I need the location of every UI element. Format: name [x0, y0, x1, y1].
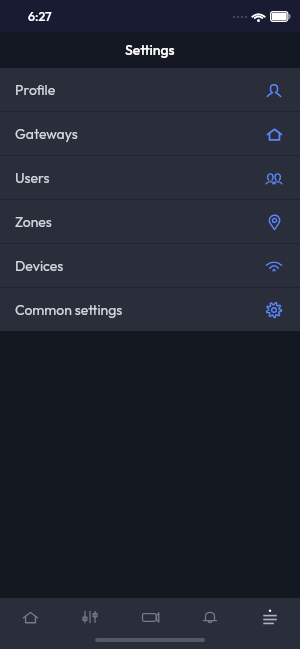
staticText: Zones — [15, 213, 52, 231]
button[interactable]: Common settings — [0, 288, 300, 331]
staticText: Profile — [15, 81, 56, 99]
staticText: Settings — [125, 41, 175, 59]
staticText: 6:27 — [28, 8, 52, 24]
button[interactable]: Gateways — [0, 112, 300, 155]
staticText: Common settings — [15, 301, 123, 319]
button[interactable]: Home — [0, 598, 60, 636]
button[interactable]: Users — [0, 156, 300, 199]
button[interactable]: Devices — [0, 244, 300, 287]
button[interactable]: Notifications — [180, 598, 240, 636]
staticText: Gateways — [15, 125, 78, 143]
button[interactable]: Controls — [60, 598, 120, 636]
button[interactable]: Profile — [0, 68, 300, 111]
staticText: Users — [15, 169, 50, 187]
button[interactable]: Menu — [240, 598, 300, 636]
button[interactable]: Camera — [120, 598, 180, 636]
button[interactable]: Zones — [0, 200, 300, 243]
staticText: Devices — [15, 257, 64, 275]
